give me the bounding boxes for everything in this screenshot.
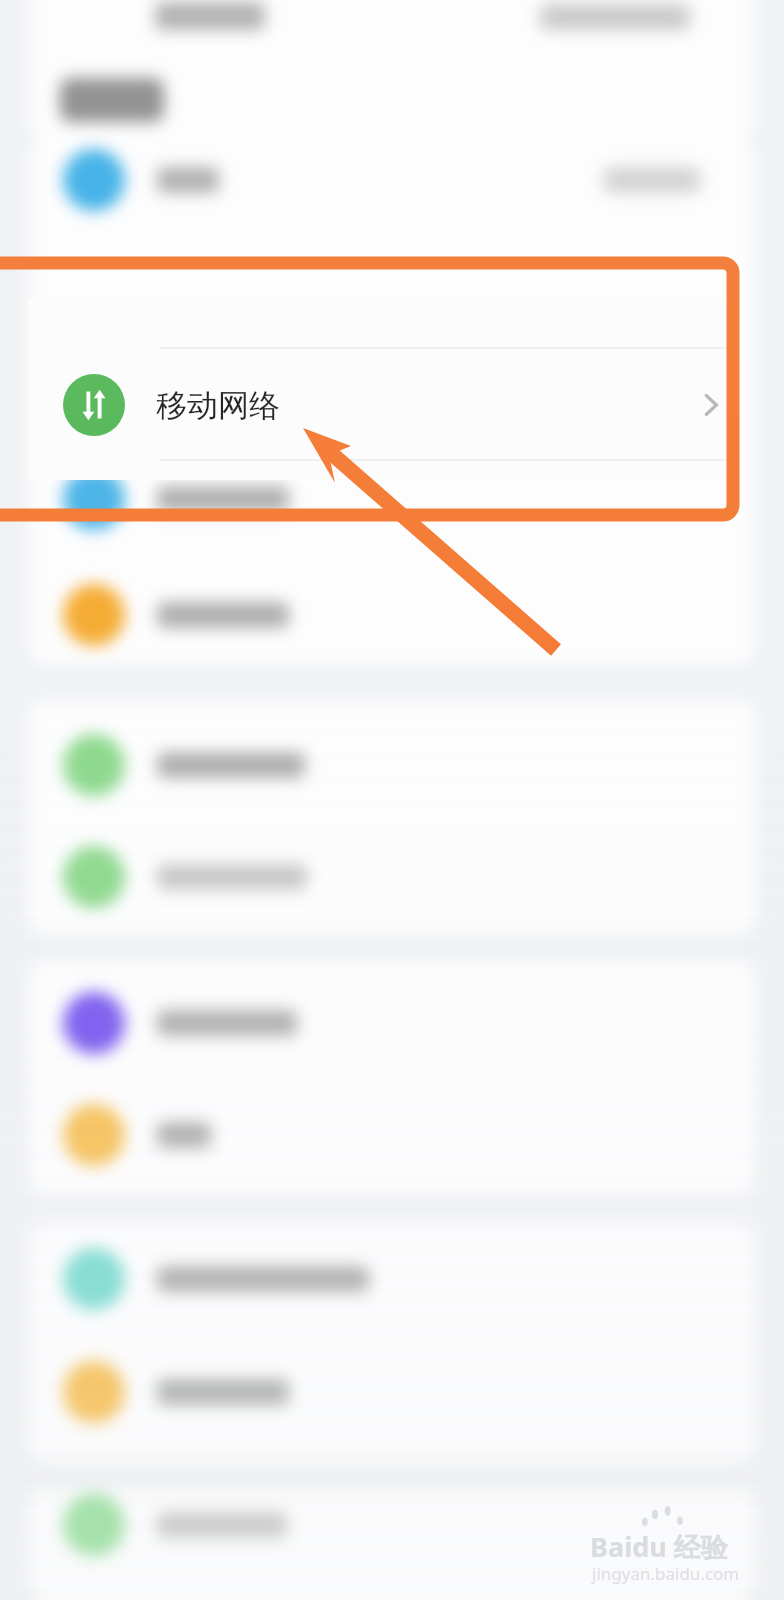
staticText: jingyan.baidu.com	[592, 1562, 740, 1585]
staticText: Baidu 经验	[590, 1528, 728, 1565]
other: 打开移动网络设置	[694, 388, 728, 422]
button[interactable]: 移动网络	[0, 350, 784, 460]
staticText: 移动网络	[156, 386, 280, 425]
